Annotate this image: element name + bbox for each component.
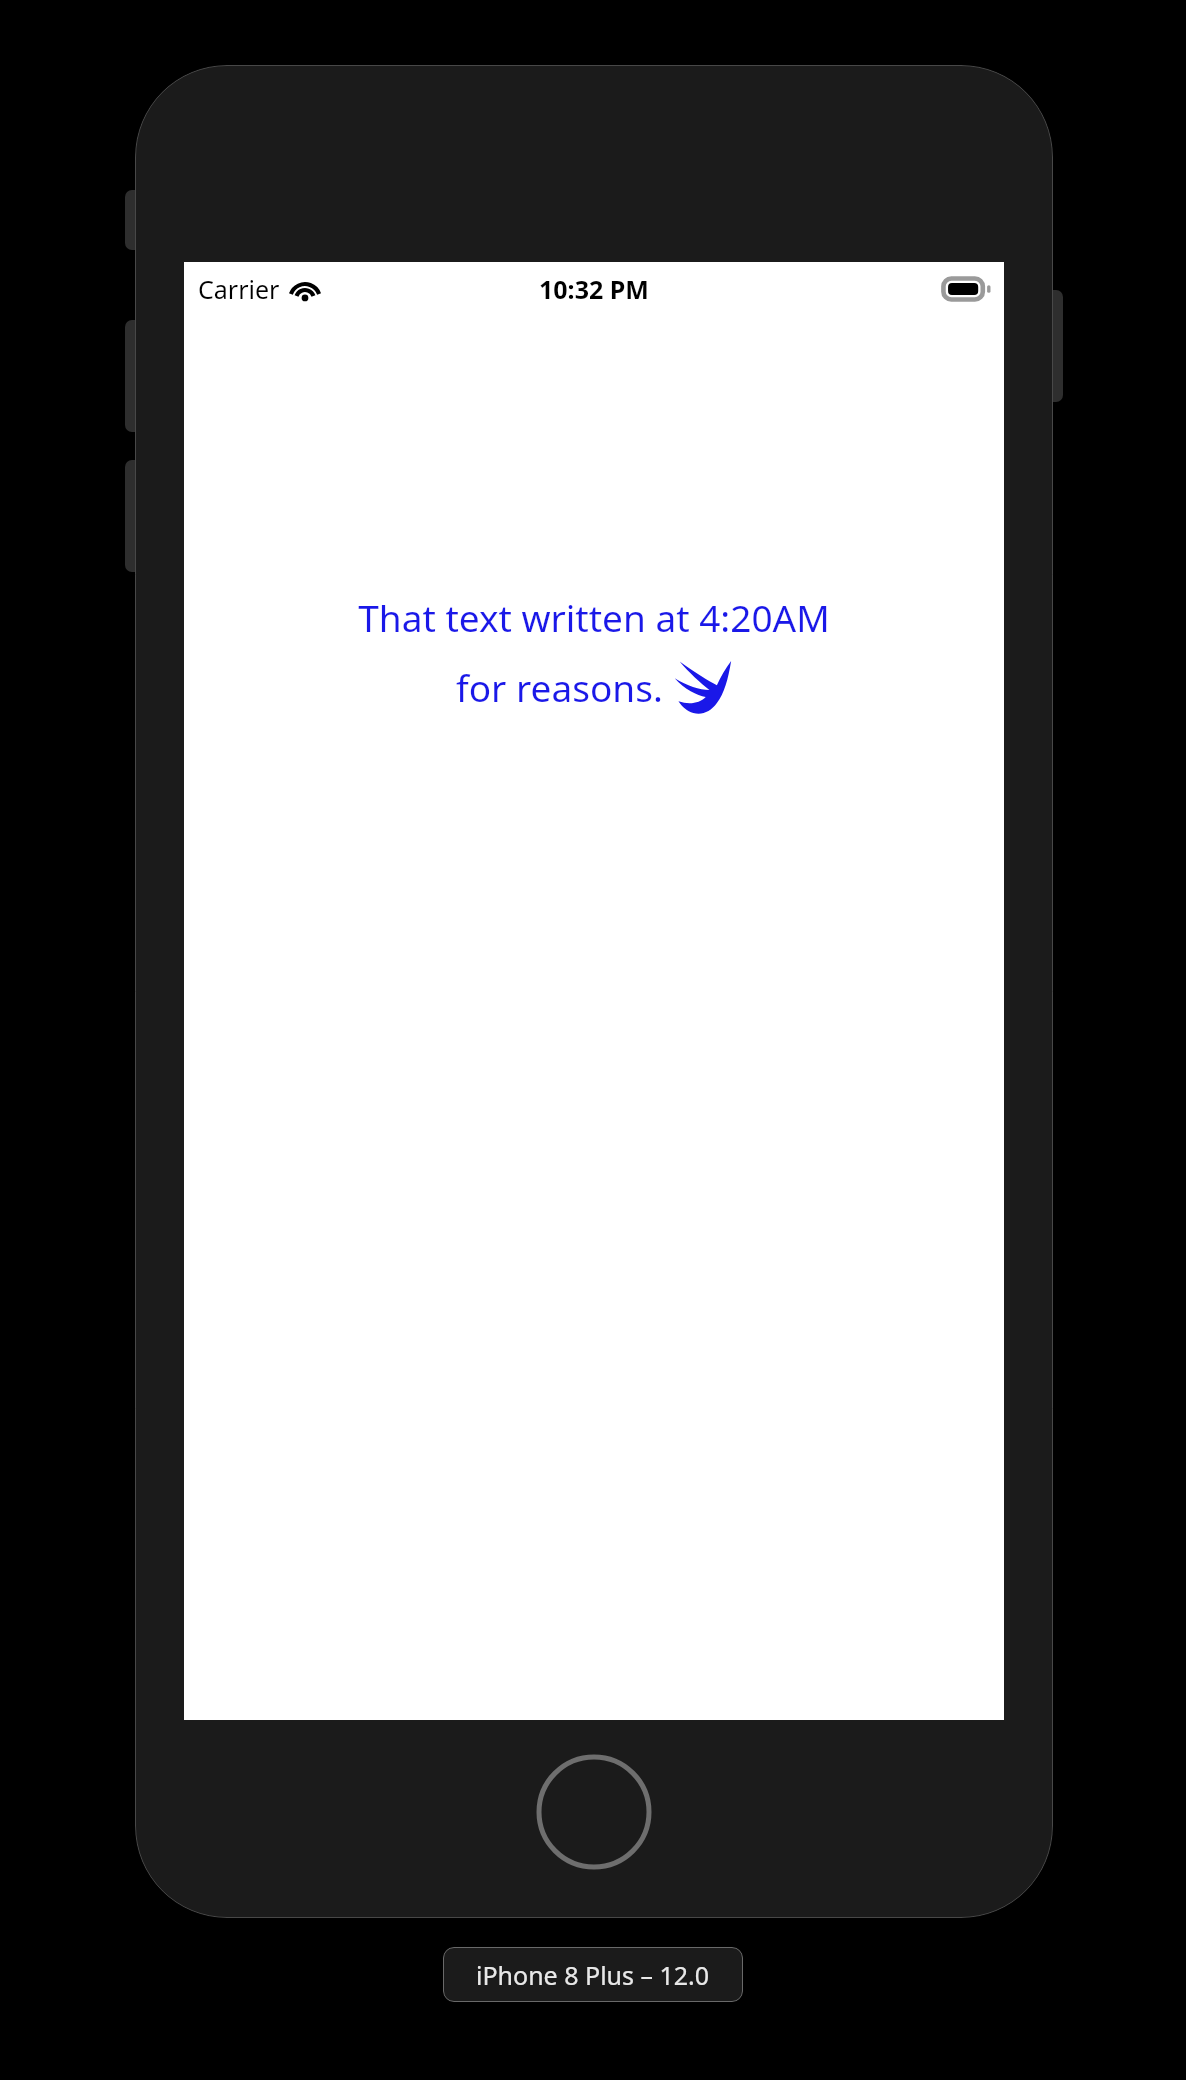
staticText: 10:32 PM [539,272,649,306]
button[interactable]: Home [535,1753,653,1871]
staticText: Carrier [198,272,280,306]
staticText: That text written at 4:20AM [358,592,830,642]
staticText: for reasons. [456,662,663,712]
staticText: iPhone 8 Plus – 12.0 [476,1958,710,1992]
button[interactable]: iPhone 8 Plus – 12.0 [443,1947,743,2002]
